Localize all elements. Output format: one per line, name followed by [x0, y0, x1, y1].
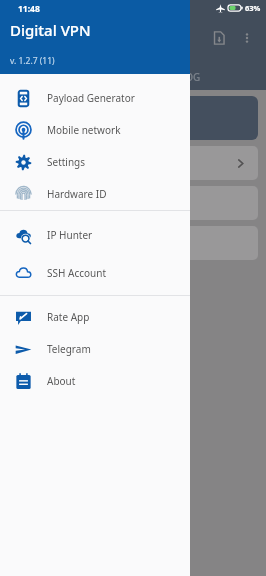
button[interactable]: Payload Generator [0, 82, 190, 114]
staticText: Digital VPN [10, 20, 91, 40]
staticText: Telegram [47, 342, 91, 356]
staticText: IP Hunter [47, 228, 93, 242]
staticText: Payload Generator [47, 91, 135, 105]
staticText: 11:48 [18, 3, 40, 15]
button[interactable]: SSH Account [0, 254, 190, 292]
button[interactable] [8, 226, 258, 260]
button[interactable] [8, 186, 258, 220]
button[interactable]: Save log file [204, 23, 234, 53]
staticText: Settings [47, 155, 86, 169]
staticText: Rate App [47, 310, 90, 324]
staticText: Hardware ID [47, 187, 107, 201]
button[interactable]: Hardware ID [0, 178, 190, 210]
button[interactable]: Settings [0, 146, 190, 178]
button[interactable]: LOG [180, 70, 201, 84]
button[interactable]: Rate App [0, 301, 190, 333]
button[interactable]: About [0, 365, 190, 397]
button[interactable] [8, 146, 258, 180]
button[interactable]: Telegram [0, 333, 190, 365]
staticText: v. 1.2.7 (11) [10, 55, 55, 67]
staticText: LOG [180, 70, 201, 84]
staticText: Mobile network [47, 123, 121, 137]
button[interactable]: More options [234, 25, 260, 51]
staticText: About [47, 374, 76, 388]
button[interactable]: IP Hunter [0, 216, 190, 254]
button[interactable]: Mobile network [0, 114, 190, 146]
button[interactable] [8, 96, 258, 140]
staticText: 63% [245, 3, 261, 13]
staticText: SSH Account [47, 266, 106, 280]
